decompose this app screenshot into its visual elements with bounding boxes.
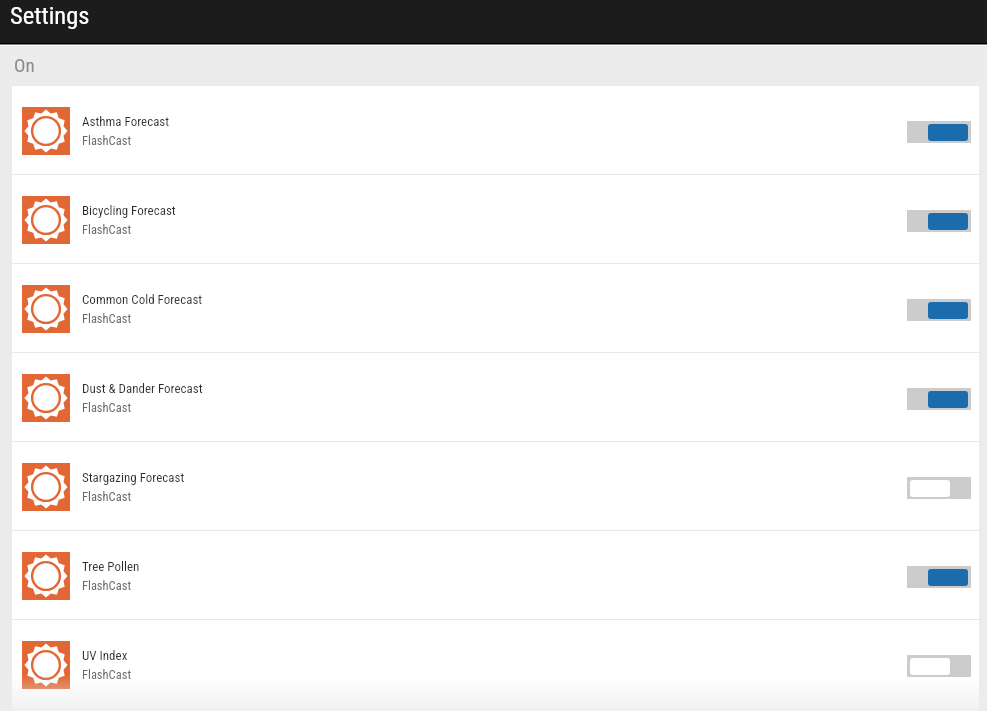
button[interactable]: Turn on	[907, 477, 971, 499]
staticText: UV Index	[82, 648, 128, 663]
button[interactable]: Stargazing Forecast	[12, 442, 979, 530]
staticText: On	[14, 54, 35, 76]
staticText: Dust & Dander Forecast	[82, 381, 203, 396]
staticText: Common Cold Forecast	[82, 292, 203, 307]
staticText: FlashCast	[82, 578, 132, 593]
staticText: FlashCast	[82, 311, 132, 326]
staticText: Asthma Forecast	[82, 114, 170, 129]
button[interactable]: Asthma Forecast	[12, 86, 979, 174]
button[interactable]: Common Cold Forecast	[12, 264, 979, 352]
staticText: Bicycling Forecast	[82, 203, 176, 218]
staticText: FlashCast	[82, 489, 132, 504]
button[interactable]: Turn on	[907, 655, 971, 677]
button[interactable]: Turn off	[907, 210, 971, 232]
staticText: Tree Pollen	[82, 559, 140, 574]
staticText: FlashCast	[82, 222, 132, 237]
button[interactable]: Turn off	[907, 299, 971, 321]
button[interactable]: Settings	[10, 1, 90, 30]
button[interactable]: Tree Pollen	[12, 531, 979, 619]
button[interactable]: Turn off	[907, 388, 971, 410]
button[interactable]: Turn off	[907, 566, 971, 588]
staticText: FlashCast	[82, 133, 132, 148]
staticText: Stargazing Forecast	[82, 470, 185, 485]
button[interactable]: UV Index	[12, 620, 979, 708]
button[interactable]: Bicycling Forecast	[12, 175, 979, 263]
staticText: FlashCast	[82, 667, 132, 682]
button[interactable]: Dust & Dander Forecast	[12, 353, 979, 441]
staticText: FlashCast	[82, 400, 132, 415]
button[interactable]: Turn off	[907, 121, 971, 143]
